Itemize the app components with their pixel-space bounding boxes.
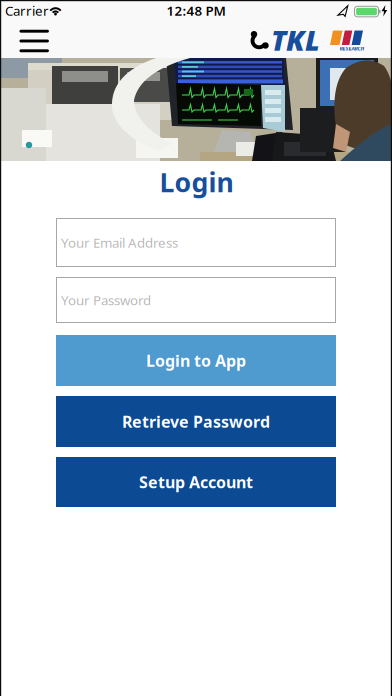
button[interactable]: Retrieve Password <box>56 396 336 447</box>
button[interactable]: Your Email Address <box>56 218 336 267</box>
button[interactable]: Menu <box>12 23 56 59</box>
button[interactable]: Login to App <box>56 335 336 386</box>
button[interactable]: Call TKL Research <box>245 21 385 59</box>
button[interactable]: Your Password <box>56 277 336 323</box>
staticText: Login to App <box>146 350 246 371</box>
staticText: Retrieve Password <box>122 411 270 432</box>
staticText: 12:48 PM <box>166 2 225 19</box>
staticText: Carrier <box>5 2 49 19</box>
staticText: Login <box>159 164 233 200</box>
staticText: Your Email Address <box>61 234 178 251</box>
staticText: RESEARCH <box>339 45 364 52</box>
staticText: Your Password <box>61 291 151 309</box>
staticText: TKL <box>271 21 320 59</box>
button[interactable]: Setup Account <box>56 457 336 507</box>
staticText: Setup Account <box>139 471 253 493</box>
